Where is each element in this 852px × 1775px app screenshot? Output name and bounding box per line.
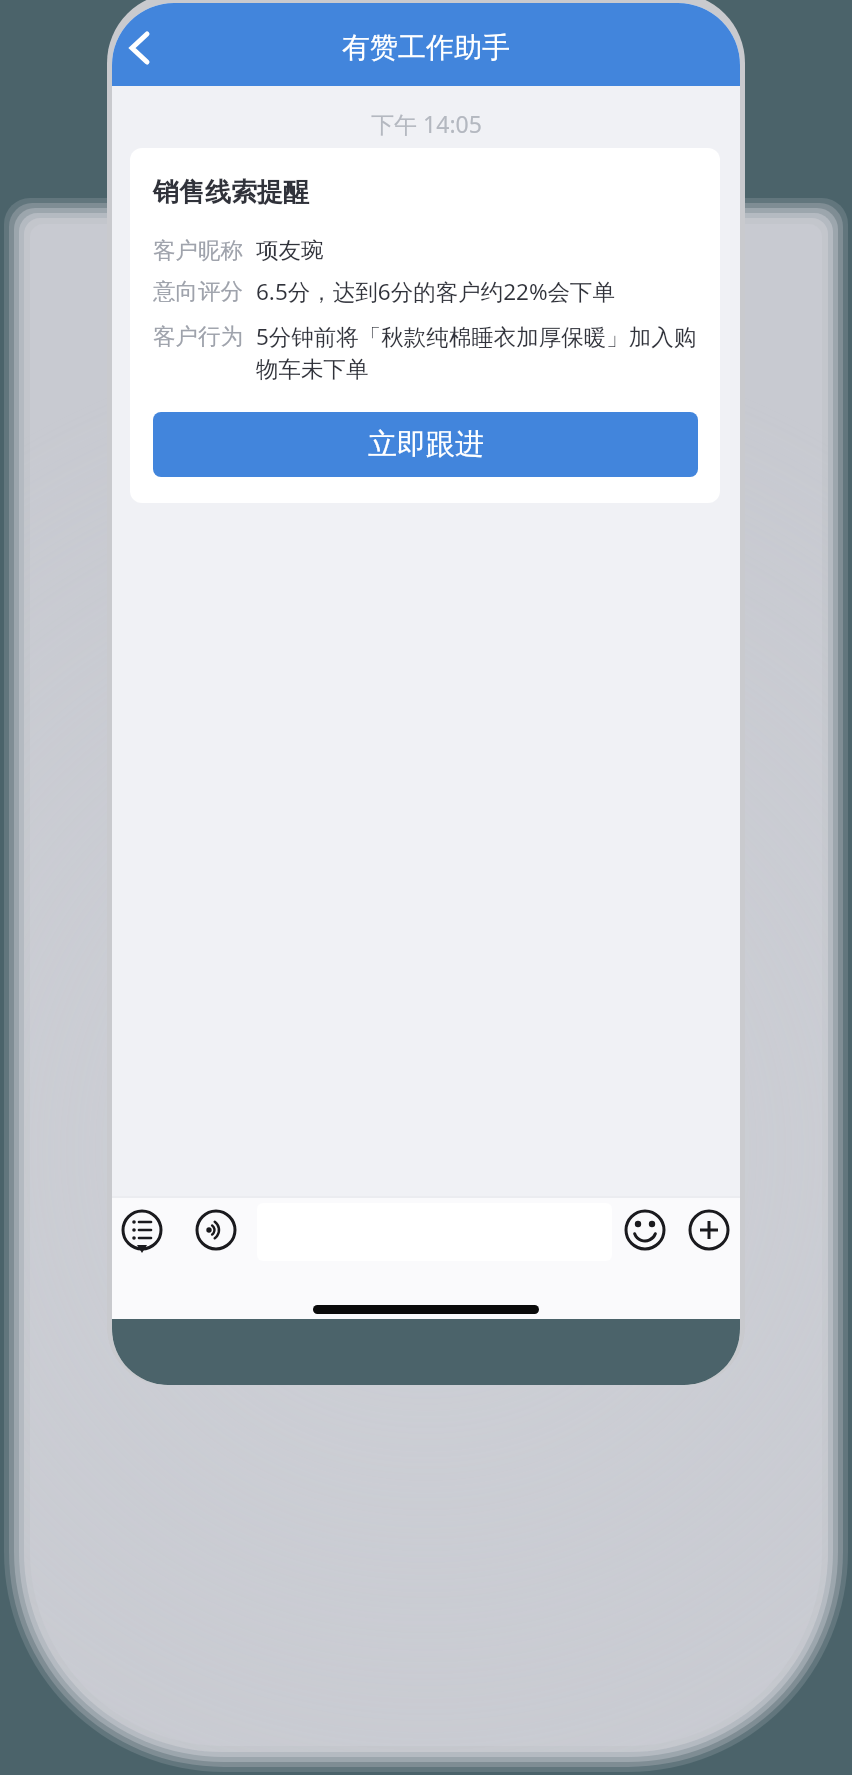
staticText: 意向评分 [153,277,243,305]
staticText: 销售线索提醒 [153,176,309,209]
button[interactable] [116,24,164,72]
staticText: 立即跟进 [368,426,484,463]
button[interactable]: 立即跟进 [153,412,698,477]
staticText: 有赞工作助手 [342,30,510,65]
button[interactable] [120,1208,164,1252]
staticText: 物车未下单 [256,355,369,383]
staticText: 6.5分，达到6分的客户约22%会下单 [256,276,616,307]
staticText: 项友琬 [256,236,324,264]
button[interactable] [194,1208,238,1252]
staticText: 客户行为 [153,322,243,350]
staticText: 下午 14:05 [371,108,482,139]
button[interactable] [687,1208,731,1252]
button[interactable] [623,1208,667,1252]
staticText: 客户昵称 [153,236,243,264]
staticText: 5分钟前将「秋款纯棉睡衣加厚保暖」加入购 [256,321,697,352]
